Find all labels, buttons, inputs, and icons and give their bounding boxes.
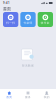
button[interactable]: 扫一扫 xyxy=(3,12,18,27)
staticText: 我的 xyxy=(44,95,50,99)
staticText: 付款码 xyxy=(23,21,32,25)
button[interactable]: 我的 xyxy=(37,89,56,100)
staticText: 首页 xyxy=(6,95,12,99)
staticText: 首页 xyxy=(3,6,11,11)
button[interactable]: 收付款 xyxy=(38,12,53,27)
staticText: 服务 xyxy=(25,95,31,99)
button[interactable]: 付款码 xyxy=(20,12,36,27)
staticText: 暂无数据 xyxy=(22,64,34,67)
button[interactable]: 首页 xyxy=(0,89,19,100)
staticText: 9:41 xyxy=(3,1,10,5)
staticText: 扫一扫 xyxy=(6,21,15,25)
button[interactable]: 服务 xyxy=(19,89,37,100)
staticText: 收付款 xyxy=(41,21,50,25)
